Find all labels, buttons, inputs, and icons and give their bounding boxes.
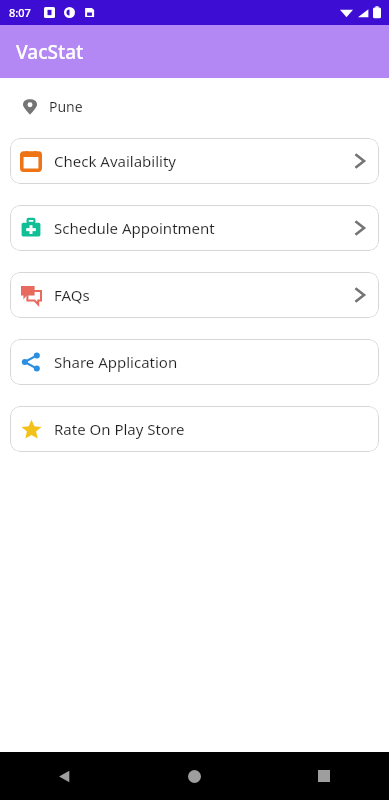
button[interactable]: Recent apps: [259, 752, 389, 800]
staticText: Share Application: [54, 352, 370, 372]
button[interactable]: Back: [0, 752, 129, 800]
button[interactable]: Rate On Play Store: [10, 406, 379, 452]
button[interactable]: Check Availability: [10, 138, 379, 184]
staticText: Pune: [49, 97, 83, 116]
staticText: FAQs: [54, 285, 350, 305]
staticText: Check Availability: [54, 151, 350, 171]
staticText: 8:07: [9, 5, 31, 20]
staticText: Rate On Play Store: [54, 419, 370, 439]
button[interactable]: Share Application: [10, 339, 379, 385]
staticText: VacStat: [16, 39, 84, 65]
button[interactable]: FAQs: [10, 272, 379, 318]
staticText: Schedule Appointment: [54, 218, 350, 238]
button[interactable]: Schedule Appointment: [10, 205, 379, 251]
button[interactable]: Home: [129, 752, 259, 800]
